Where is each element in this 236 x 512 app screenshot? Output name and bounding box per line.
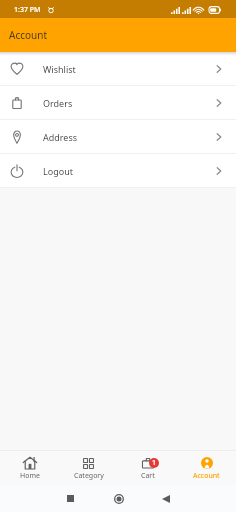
staticText: Home bbox=[20, 471, 40, 481]
staticText: Wishlist bbox=[43, 63, 76, 75]
staticText: Category bbox=[74, 471, 104, 481]
staticText: Account bbox=[193, 471, 220, 481]
button[interactable]: Logout bbox=[0, 154, 236, 188]
staticText: 1:37 PM bbox=[14, 5, 41, 15]
staticText: 1 bbox=[152, 458, 157, 468]
button[interactable]: Account bbox=[177, 456, 236, 481]
button[interactable]: Wishlist bbox=[0, 52, 236, 86]
button[interactable]: 1 bbox=[118, 456, 177, 481]
staticText: Cart bbox=[141, 471, 155, 481]
other: Home bbox=[114, 494, 124, 504]
other: Back bbox=[162, 495, 170, 503]
button[interactable]: Category bbox=[59, 456, 118, 481]
button[interactable]: Orders bbox=[0, 86, 236, 120]
staticText: Address bbox=[43, 131, 78, 143]
staticText: Account bbox=[9, 28, 48, 42]
staticText: Logout bbox=[43, 165, 73, 177]
button[interactable]: Address bbox=[0, 120, 236, 154]
staticText: Orders bbox=[43, 97, 73, 109]
button[interactable]: Home bbox=[0, 456, 59, 481]
